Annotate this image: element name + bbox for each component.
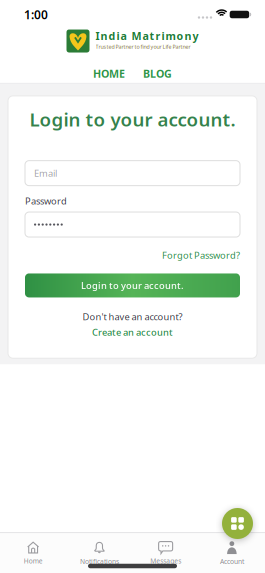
button[interactable]: Menu bbox=[222, 508, 253, 539]
staticText: Messages bbox=[150, 557, 181, 565]
staticText: Notifications bbox=[80, 557, 119, 566]
staticText: BLOG bbox=[143, 66, 172, 81]
button[interactable]: Messages bbox=[132, 542, 199, 565]
staticText: Account bbox=[220, 557, 244, 566]
staticText: Forgot Password? bbox=[162, 249, 240, 261]
staticText: Trusted Partner to find your Life Partne… bbox=[95, 43, 190, 50]
button[interactable]: Account bbox=[199, 541, 265, 566]
button[interactable]: Forgot Password? bbox=[162, 249, 240, 261]
button[interactable]: BLOG bbox=[143, 66, 172, 81]
staticText: Login to your account. bbox=[81, 279, 184, 292]
button[interactable]: Login to your account. bbox=[25, 273, 240, 297]
staticText: Create an account bbox=[92, 326, 173, 338]
staticText: Email bbox=[34, 167, 57, 179]
button[interactable]: Create an account bbox=[92, 326, 173, 338]
button[interactable]: HOME bbox=[93, 66, 125, 81]
staticText: Login to your account. bbox=[29, 107, 235, 132]
staticText: Don't have an account? bbox=[82, 310, 182, 323]
staticText: 1:00 bbox=[24, 6, 48, 22]
button[interactable]: Notifications bbox=[66, 541, 132, 566]
staticText: Home bbox=[24, 557, 43, 565]
staticText: I n d i a M a t r i m o n y bbox=[95, 29, 198, 43]
staticText: Password bbox=[25, 195, 67, 207]
staticText: HOME bbox=[93, 66, 125, 81]
button[interactable]: Home bbox=[0, 542, 66, 565]
